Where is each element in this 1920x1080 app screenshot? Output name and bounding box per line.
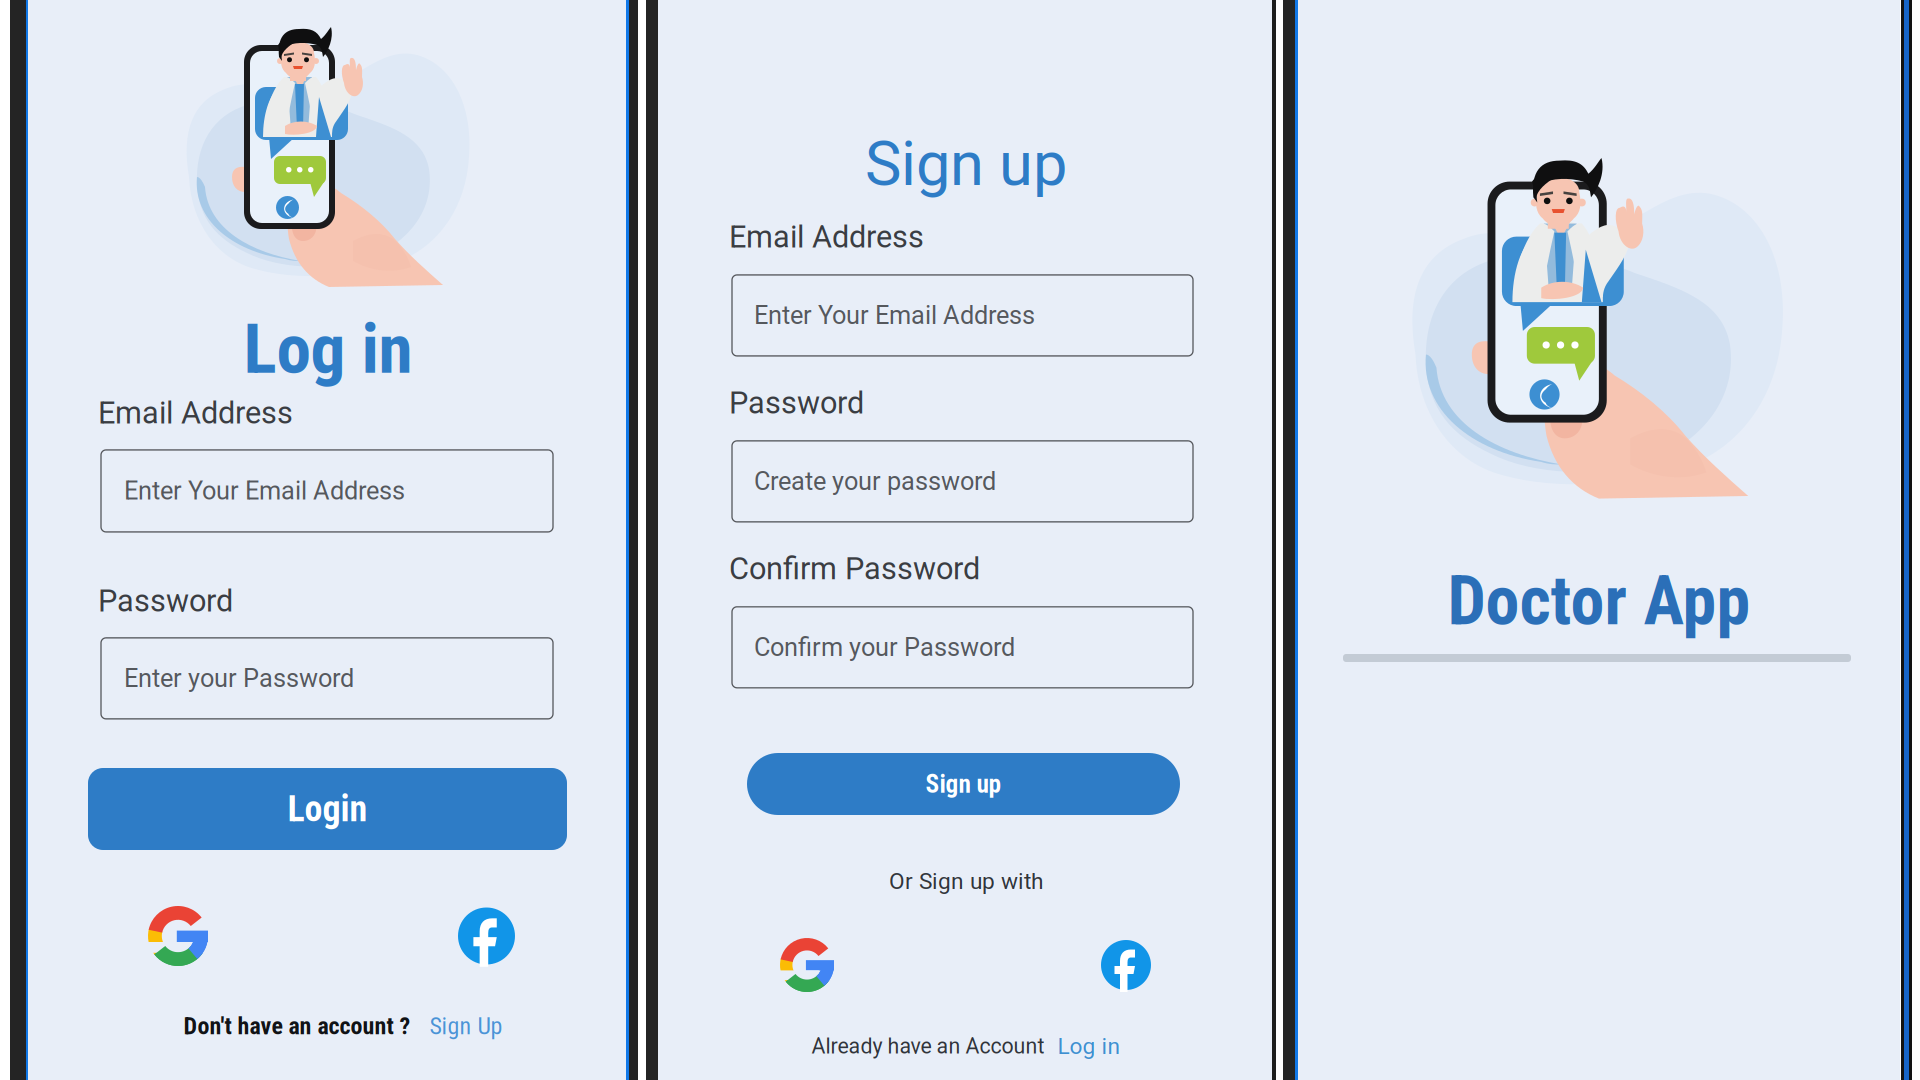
staticText: Already have an Account bbox=[811, 1034, 1044, 1059]
button[interactable]: Enter Your Email Address bbox=[732, 275, 1193, 356]
button[interactable]: Sign Up bbox=[429, 1012, 502, 1040]
button[interactable]: Continue with Facebook bbox=[458, 907, 515, 964]
button[interactable]: Enter your Password bbox=[101, 638, 553, 719]
staticText: Or Sign up with bbox=[889, 868, 1043, 895]
staticText: Email Address bbox=[98, 395, 293, 431]
button[interactable]: Confirm your Password bbox=[732, 607, 1193, 688]
staticText: Sign Up bbox=[429, 1012, 502, 1040]
button[interactable]: Sign up with Facebook bbox=[1101, 940, 1151, 990]
staticText: Create your password bbox=[754, 466, 996, 496]
button[interactable]: Continue with Google bbox=[148, 906, 208, 966]
staticText: Enter Your Email Address bbox=[754, 301, 1035, 330]
button[interactable]: Enter Your Email Address bbox=[101, 450, 553, 532]
staticText: Log in bbox=[1057, 1033, 1120, 1060]
button[interactable]: Log in bbox=[1057, 1033, 1120, 1060]
button[interactable]: Sign up bbox=[747, 753, 1180, 815]
staticText: Login bbox=[287, 788, 367, 830]
staticText: Enter Your Email Address bbox=[124, 476, 405, 506]
button[interactable]: Sign up with Google bbox=[780, 938, 834, 992]
staticText: Confirm Password bbox=[729, 551, 980, 587]
staticText: Enter your Password bbox=[124, 663, 354, 693]
staticText: Log in bbox=[243, 308, 412, 390]
staticText: Confirm your Password bbox=[754, 632, 1015, 662]
staticText: Password bbox=[98, 583, 233, 619]
button[interactable]: Create your password bbox=[732, 441, 1193, 522]
staticText: Email Address bbox=[729, 219, 924, 255]
staticText: Sign up bbox=[865, 128, 1067, 200]
staticText: Password bbox=[729, 385, 864, 421]
staticText: Sign up bbox=[925, 769, 1001, 799]
staticText: Don't have an account ? bbox=[183, 1012, 410, 1040]
staticText: Doctor App bbox=[1447, 561, 1750, 641]
button[interactable]: Login bbox=[88, 768, 567, 850]
